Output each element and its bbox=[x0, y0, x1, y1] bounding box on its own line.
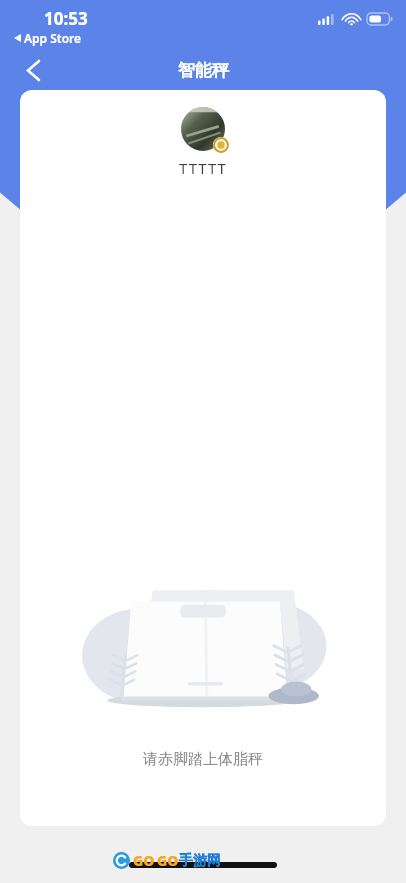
staticText: 智能秤 bbox=[178, 60, 229, 81]
staticText: GO bbox=[133, 851, 155, 870]
staticText: TTTTT bbox=[179, 158, 227, 178]
staticText: GO bbox=[157, 851, 179, 870]
button[interactable]: User avatar bbox=[181, 107, 225, 151]
button[interactable]: Back bbox=[11, 50, 55, 90]
staticText: 10:53 bbox=[44, 7, 88, 30]
staticText: 手游网 bbox=[179, 852, 221, 870]
staticText: App Store bbox=[24, 30, 82, 46]
staticText: 请赤脚踏上体脂秤 bbox=[143, 750, 263, 769]
